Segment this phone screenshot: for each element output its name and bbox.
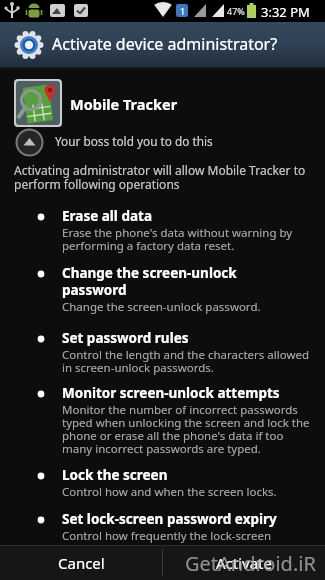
button[interactable]: Activate bbox=[163, 545, 325, 580]
staticText: Mobile Tracker bbox=[70, 94, 178, 114]
staticText: Activating administrator will allow Mobi… bbox=[14, 162, 306, 193]
staticText: Monitor screen-unlock attempts bbox=[62, 384, 280, 402]
button[interactable]: Monitor screen-unlock attempts bbox=[34, 384, 314, 457]
staticText: Control how and when the screen locks. bbox=[62, 484, 277, 500]
staticText: Activate bbox=[216, 553, 272, 573]
staticText: Change the screen-unlock password bbox=[62, 264, 237, 299]
button[interactable]: Cancel bbox=[0, 545, 162, 580]
staticText: Your boss told you to do this bbox=[55, 133, 213, 149]
staticText: GetAndroid.iR bbox=[185, 550, 316, 577]
staticText: Erase the phone's data without warning b… bbox=[62, 225, 293, 254]
staticText: Monitor the number of incorrect password… bbox=[62, 402, 310, 457]
button[interactable]: Lock the screen bbox=[34, 466, 314, 500]
button[interactable]: Set lock-screen password expiry bbox=[34, 510, 314, 544]
staticText: Change the screen-unlock password. bbox=[62, 299, 261, 315]
button[interactable]: Set password rules bbox=[34, 329, 314, 376]
staticText: Set password rules bbox=[62, 329, 189, 347]
staticText: Lock the screen bbox=[62, 466, 168, 484]
staticText: Activate device administrator? bbox=[52, 33, 278, 55]
staticText: 47% bbox=[227, 5, 245, 17]
staticText: Erase all data bbox=[62, 207, 152, 225]
staticText: Cancel bbox=[58, 553, 105, 573]
staticText: 3:32 PM bbox=[261, 3, 310, 21]
staticText: Control how frequently the lock-screen bbox=[62, 528, 272, 544]
staticText: Control the length and the characters al… bbox=[62, 347, 310, 376]
staticText: 1 bbox=[180, 5, 186, 17]
button[interactable]: Erase all data bbox=[34, 207, 314, 254]
staticText: Set lock-screen password expiry bbox=[62, 510, 277, 528]
button[interactable]: Your boss told you to do this bbox=[15, 128, 213, 157]
button[interactable]: Change the screen-unlock password bbox=[34, 264, 314, 315]
